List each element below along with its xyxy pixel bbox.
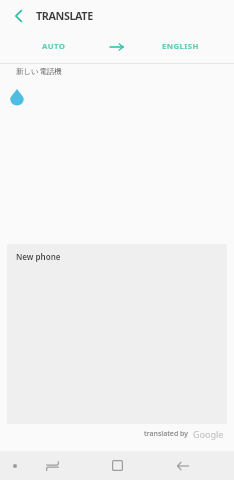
staticText: translated by (144, 429, 188, 439)
button[interactable]: 新しい電話機 (0, 64, 234, 242)
button[interactable]: Back (168, 451, 197, 480)
button[interactable]: Menu (0, 451, 29, 480)
button[interactable]: Switch window (38, 451, 67, 480)
staticText: TRANSLATE (36, 8, 93, 23)
button[interactable]: Navigate up (0, 0, 36, 31)
button[interactable]: Google (193, 428, 224, 440)
button[interactable]: ENGLISH (127, 31, 234, 62)
staticText: AUTO (42, 41, 66, 52)
staticText: ENGLISH (162, 41, 199, 52)
button[interactable]: AUTO (0, 31, 107, 62)
button[interactable]: New phone (7, 244, 227, 424)
button[interactable]: Recent apps (103, 451, 132, 480)
staticText: 新しい電話機 (16, 67, 62, 77)
staticText: New phone (16, 251, 61, 262)
button[interactable]: Swap languages (107, 31, 127, 62)
